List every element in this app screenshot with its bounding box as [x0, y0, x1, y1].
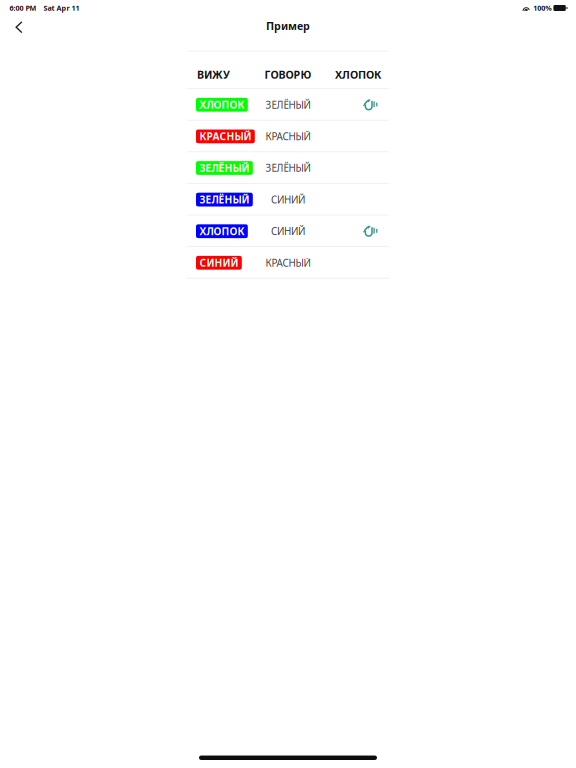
staticText: КРАСНЫЙ	[265, 130, 310, 143]
staticText: 6:00 PM	[9, 3, 36, 13]
staticText: ЗЕЛЁНЫЙ	[265, 161, 310, 175]
button[interactable]: КРАСНЫЙ	[187, 121, 389, 152]
button[interactable]: ХЛОПОК	[187, 215, 389, 247]
staticText: Пример	[266, 19, 310, 33]
staticText: ХЛОПОК	[199, 98, 244, 112]
staticText: Sat Apr 11	[43, 3, 79, 13]
staticText: ЗЕЛЁНЫЙ	[265, 98, 310, 111]
staticText: ЗЕЛЁНЫЙ	[199, 161, 249, 175]
staticText: СИНИЙ	[271, 224, 305, 238]
staticText: КРАСНЫЙ	[199, 129, 251, 143]
staticText: ХЛОПОК	[199, 224, 244, 238]
staticText: СИНИЙ	[271, 193, 305, 206]
button[interactable]: ЗЕЛЁНЫЙ	[187, 184, 389, 215]
staticText: ГОВОРЮ	[264, 67, 311, 82]
staticText: КРАСНЫЙ	[265, 256, 310, 269]
staticText: 100%	[533, 3, 551, 13]
button[interactable]: ЗЕЛЁНЫЙ	[187, 152, 389, 184]
button[interactable]: Back	[0, 16, 38, 38]
staticText: ХЛОПОК	[335, 67, 381, 82]
button[interactable]: ХЛОПОК	[187, 89, 389, 121]
button[interactable]: СИНИЙ	[187, 247, 389, 279]
staticText: ЗЕЛЁНЫЙ	[199, 193, 249, 206]
staticText: СИНИЙ	[199, 256, 238, 270]
staticText: ВИЖУ	[197, 67, 230, 82]
